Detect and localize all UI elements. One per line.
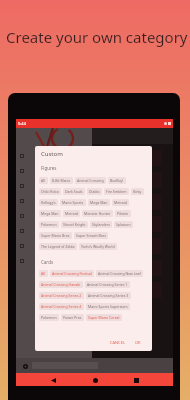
button[interactable]: Shovel Knight	[61, 221, 88, 228]
staticText: Dark Souls	[65, 189, 83, 194]
staticText: The Legend of Zelda	[41, 244, 75, 249]
button[interactable]: Animal Crossing Series 2	[39, 292, 84, 299]
button[interactable]: Tool	[20, 229, 24, 233]
staticText: Animal Crossing Festival	[52, 271, 92, 276]
button[interactable]: Settings	[21, 362, 29, 370]
staticText: OK	[135, 340, 141, 345]
staticText: Kirby	[133, 189, 142, 194]
staticText: Kellogg's	[41, 200, 56, 205]
button[interactable]: OK	[132, 338, 144, 347]
button[interactable]: Pokemon	[39, 221, 59, 228]
staticText: All	[41, 271, 46, 276]
button[interactable]: Animal Crossing Festival	[50, 270, 94, 277]
button[interactable]: Yoshi's Woolly World	[79, 243, 117, 250]
button[interactable]: 8-Bit Mario	[50, 177, 73, 184]
staticText: Animal Crossing Series 4	[41, 304, 82, 309]
button[interactable]: Super Mario Cereal	[86, 314, 122, 321]
staticText: Yoshi's Woolly World	[81, 244, 115, 249]
button[interactable]: Power Pros	[61, 314, 84, 321]
button[interactable]: Home	[91, 376, 99, 384]
button[interactable]: Super Smash Bros	[74, 232, 108, 239]
button[interactable]: Dark Souls	[63, 188, 85, 195]
button[interactable]: Pokemon	[39, 314, 59, 321]
button[interactable]: Tool	[20, 199, 24, 203]
button[interactable]: Tool	[20, 154, 24, 158]
button[interactable]: Animal Crossing	[75, 177, 106, 184]
staticText: Chibi Robo	[41, 189, 59, 194]
staticText: Shovel Knight	[63, 222, 86, 227]
button[interactable]: Animal Crossing Series 3	[86, 292, 131, 299]
staticText: Animal Crossing Series 3	[88, 293, 129, 298]
button[interactable]: BoxBoy!	[108, 177, 126, 184]
button[interactable]: Pikmin	[115, 210, 131, 217]
button[interactable]: Animal Crossing Series 4	[39, 303, 84, 310]
button[interactable]: Splatoon	[114, 221, 133, 228]
button[interactable]: Mario Sports	[60, 199, 86, 206]
staticText: Super Mario Bros	[41, 233, 70, 238]
button[interactable]: Mario Sports Superstars	[86, 303, 130, 310]
button[interactable]: Skylanders	[90, 221, 112, 228]
staticText: Animal Crossing Hanabi	[41, 282, 81, 287]
staticText: Diablo	[89, 189, 100, 194]
staticText: Super Smash Bros	[76, 233, 106, 238]
staticText: Cards	[41, 259, 54, 265]
staticText: Metroid	[65, 211, 78, 216]
button[interactable]: Animal Crossing New Leaf	[96, 270, 143, 277]
staticText: 5:44	[18, 121, 26, 126]
button[interactable]: Chibi Robo	[39, 188, 61, 195]
button[interactable]: Metroid	[63, 210, 80, 217]
staticText: Skylanders	[92, 222, 110, 227]
staticText: Splatoon	[116, 222, 131, 227]
staticText: Metroid	[114, 200, 127, 205]
staticText: Pokemon	[41, 315, 57, 320]
button[interactable]: Monster Hunter	[82, 210, 113, 217]
button[interactable]: All	[39, 177, 48, 184]
staticText: Mega Man	[90, 200, 108, 205]
button[interactable]: The Legend of Zelda	[39, 243, 77, 250]
button[interactable]: Super Mario Bros	[39, 232, 72, 239]
staticText: Animal Crossing Series 2	[41, 293, 82, 298]
staticText: Monster Hunter	[84, 211, 111, 216]
button[interactable]: CANCEL	[107, 338, 128, 347]
button[interactable]: Recents	[132, 376, 140, 384]
button[interactable]: Animal Crossing Series 1	[85, 281, 130, 288]
button[interactable]: Tool	[20, 259, 24, 263]
button[interactable]: Kellogg's	[39, 199, 58, 206]
button[interactable]: Mega Man	[88, 199, 110, 206]
staticText: BoxBoy!	[110, 178, 124, 183]
button[interactable]: Kirby	[131, 188, 144, 195]
staticText: Figures	[41, 165, 57, 171]
button[interactable]: Diablo	[87, 188, 102, 195]
staticText: Animal Crossing Series 1	[87, 282, 128, 287]
button[interactable]: Fire Emblem	[104, 188, 129, 195]
button[interactable]: Metroid	[112, 199, 129, 206]
staticText: Custom	[41, 150, 63, 158]
button[interactable]: All	[39, 270, 48, 277]
button[interactable]: Tool	[20, 214, 24, 218]
staticText: Pokemon	[41, 222, 57, 227]
staticText: Mega Man	[41, 211, 59, 216]
staticText: Pikmin	[117, 211, 129, 216]
staticText: Super Mario Cereal	[88, 315, 120, 320]
button[interactable]: Tool	[20, 184, 24, 188]
button[interactable]: Tool	[20, 169, 24, 173]
staticText: All	[41, 178, 46, 183]
button[interactable]: Tool	[20, 244, 24, 248]
button[interactable]: Mega Man	[39, 210, 61, 217]
staticText: Mario Sports	[62, 200, 84, 205]
staticText: Create your own category	[6, 27, 188, 47]
button[interactable]: Animal Crossing Hanabi	[39, 281, 83, 288]
button[interactable]: Back	[49, 376, 57, 384]
staticText: Animal Crossing New Leaf	[98, 271, 141, 276]
staticText: CANCEL	[110, 340, 125, 345]
staticText: 8-Bit Mario	[52, 178, 71, 183]
staticText: Power Pros	[63, 315, 82, 320]
staticText: Fire Emblem	[106, 189, 127, 194]
staticText: Mario Sports Superstars	[88, 304, 128, 309]
staticText: Animal Crossing	[77, 178, 104, 183]
